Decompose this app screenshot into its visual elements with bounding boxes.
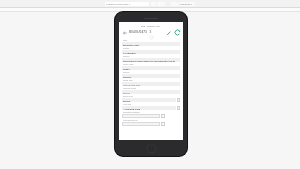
button[interactable]: Stepper — [177, 98, 180, 102]
staticText: B0435/0473 3 — [129, 30, 152, 34]
button[interactable]: Back — [121, 29, 128, 36]
button[interactable]: Others — [122, 71, 180, 78]
button[interactable]: Unit Site — [122, 103, 180, 110]
button[interactable]: Space Use — [122, 95, 180, 102]
staticText: B0492 — [123, 99, 131, 102]
staticText: Business Unit — [123, 43, 140, 46]
staticText: Add to Site Flat — [123, 83, 140, 86]
button[interactable]: Same Title — [122, 79, 180, 86]
button[interactable]: Normal Order — [122, 87, 180, 94]
staticText: Package Category — [123, 111, 140, 114]
button[interactable]: Details — [122, 55, 180, 62]
button[interactable]: Short Code — [122, 63, 180, 70]
staticText: Gathering 7 — [180, 3, 193, 6]
staticText: B0492 — [123, 91, 131, 94]
button[interactable]: Pick — [161, 114, 165, 118]
staticText: Same Title — [123, 79, 133, 82]
button[interactable]: Pick — [161, 122, 165, 126]
staticText: - CHOOSE ONE — [123, 107, 140, 110]
staticText: Unit Site — [123, 103, 131, 106]
button[interactable]: Edit — [165, 29, 172, 36]
button[interactable]: B0435/0473 3 — [129, 30, 152, 34]
button[interactable]: Classe — [122, 47, 180, 54]
button[interactable]: Anything for all — [122, 119, 180, 126]
staticText: Common Sheet Order 7 — [106, 3, 131, 6]
staticText: S0597 — [123, 67, 130, 70]
button[interactable]: Package Category — [122, 111, 180, 118]
staticText: A Program — [123, 51, 136, 54]
button[interactable]: Stepper — [177, 106, 180, 110]
staticText: Site - Branch Net — [141, 24, 160, 27]
staticText: Task — [123, 39, 128, 42]
staticText: Space Use — [123, 95, 133, 98]
staticText: Short Code — [123, 63, 134, 66]
staticText: Rooms — [123, 75, 132, 78]
button[interactable]: Gathering 7 — [179, 2, 195, 6]
button[interactable]: Task — [122, 39, 180, 46]
staticText: Normal Order — [123, 87, 137, 90]
button[interactable]: Common Sheet Order 7 — [105, 2, 149, 6]
staticText: Received in each RMB for the business fa… — [123, 59, 175, 62]
staticText: Classe — [123, 47, 129, 50]
staticText: Others — [123, 71, 130, 74]
staticText: Details — [123, 55, 130, 58]
staticText: Anything for all — [123, 119, 138, 122]
button[interactable]: Refresh — [174, 29, 181, 36]
